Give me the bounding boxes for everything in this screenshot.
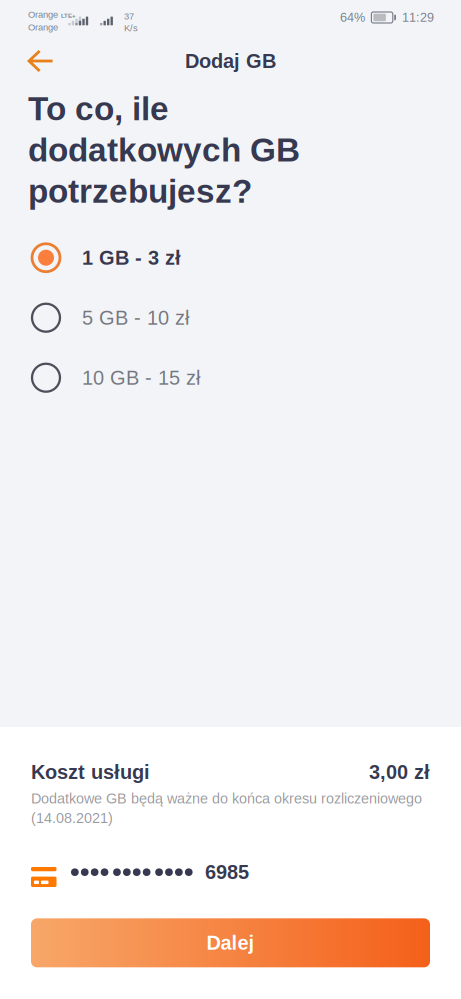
staticText: Dodatkowe GB będą ważne do końca okresu … — [31, 790, 422, 826]
staticText: Orange — [28, 9, 58, 20]
staticText: Dalej — [206, 932, 254, 954]
staticText: Koszt usługi — [31, 761, 150, 783]
staticText: 1 GB - 3 zł — [82, 246, 181, 269]
staticText: 5 GB - 10 zł — [82, 306, 189, 329]
button[interactable]: Dalej — [31, 918, 430, 967]
staticText: To co, ile dodatkowych GB potrzebujesz? — [28, 90, 300, 210]
staticText: 6985 — [205, 861, 249, 883]
staticText: Orange — [28, 22, 58, 32]
staticText: Dodaj GB — [185, 50, 276, 72]
staticText: K/s — [124, 23, 138, 33]
button[interactable]: 1 GB - 3 zł — [0, 228, 461, 288]
staticText: LTE+ — [61, 12, 76, 19]
staticText: 10 GB - 15 zł — [82, 366, 200, 389]
staticText: 64% — [340, 10, 365, 25]
button[interactable]: 10 GB - 15 zł — [0, 348, 461, 408]
button[interactable]: 5 GB - 10 zł — [0, 288, 461, 348]
staticText: 11:29 — [402, 10, 434, 25]
staticText: 3,00 zł — [369, 761, 430, 783]
button[interactable]: Back — [16, 39, 66, 83]
staticText: 37 — [124, 11, 134, 21]
